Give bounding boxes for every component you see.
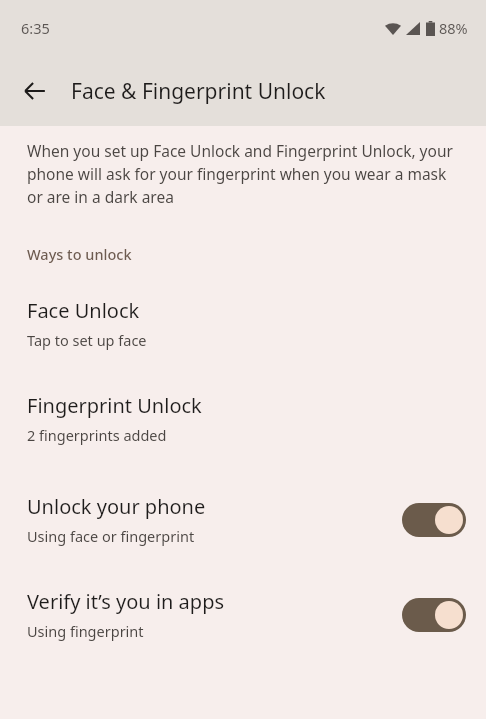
- button[interactable]: Toggle: [402, 503, 466, 537]
- staticText: Face Unlock: [27, 297, 140, 324]
- button[interactable]: Fingerprint Unlock: [0, 392, 486, 445]
- staticText: 2 fingerprints added: [27, 425, 167, 445]
- staticText: 88%: [439, 18, 468, 38]
- staticText: Unlock your phone: [27, 493, 206, 520]
- staticText: Face & Fingerprint Unlock: [71, 77, 326, 106]
- button[interactable]: Unlock your phone: [0, 493, 486, 546]
- staticText: 6:35: [21, 18, 50, 38]
- button[interactable]: Face Unlock: [0, 297, 486, 350]
- staticText: Using face or fingerprint: [27, 526, 195, 546]
- button[interactable]: Verify it’s you in apps: [0, 588, 486, 641]
- staticText: Using fingerprint: [27, 621, 144, 641]
- staticText: Ways to unlock: [27, 244, 132, 264]
- staticText: Verify it’s you in apps: [27, 588, 225, 615]
- button[interactable]: Toggle: [402, 598, 466, 632]
- staticText: Tap to set up face: [27, 330, 147, 350]
- button[interactable]: Back: [11, 67, 59, 115]
- staticText: When you set up Face Unlock and Fingerpr…: [27, 140, 456, 208]
- staticText: Fingerprint Unlock: [27, 392, 202, 419]
